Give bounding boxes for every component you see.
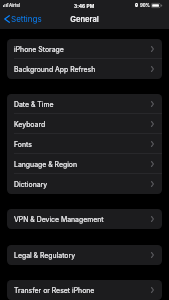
button[interactable]: Legal & Regulatory [7, 245, 162, 265]
button[interactable]: Back to Settings [0, 11, 47, 27]
staticText: Settings [11, 14, 42, 24]
staticText: Background App Refresh [14, 65, 96, 73]
button[interactable]: Language & Region [7, 154, 162, 174]
button[interactable]: Background App Refresh [7, 59, 162, 79]
button[interactable]: Transfer or Reset iPhone [7, 280, 162, 300]
staticText: VPN & Device Management [14, 215, 104, 223]
staticText: Transfer or Reset iPhone [14, 286, 95, 294]
staticText: Legal & Regulatory [14, 251, 76, 259]
staticText: 3:46 PM [74, 3, 95, 9]
staticText: 90% [140, 3, 150, 8]
staticText: Language & Region [14, 160, 78, 168]
staticText: iPhone Storage [14, 45, 64, 53]
staticText: Airtel [9, 3, 21, 8]
button[interactable]: iPhone Storage [7, 39, 162, 59]
button[interactable]: Date & Time [7, 94, 162, 114]
staticText: Keyboard [14, 120, 46, 128]
button[interactable]: Fonts [7, 134, 162, 154]
staticText: Dictionary [14, 180, 48, 188]
staticText: General [70, 15, 99, 24]
button[interactable]: VPN & Device Management [7, 209, 162, 229]
button[interactable]: Keyboard [7, 114, 162, 134]
staticText: Fonts [14, 140, 32, 148]
button[interactable]: Dictionary [7, 174, 162, 194]
staticText: Date & Time [14, 100, 54, 108]
